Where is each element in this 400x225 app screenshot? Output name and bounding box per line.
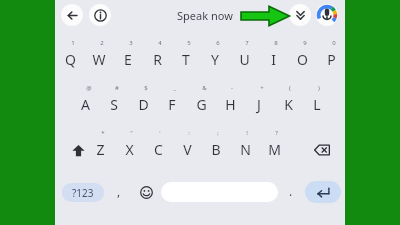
- staticText: A: [81, 95, 90, 114]
- button[interactable]: Info: [89, 4, 111, 26]
- staticText: L: [313, 95, 321, 114]
- button[interactable]: Back: [61, 4, 83, 26]
- button[interactable]: &: [187, 84, 215, 118]
- button[interactable]: ;: [202, 129, 230, 163]
- button[interactable]: 5: [172, 39, 200, 73]
- button[interactable]: .: [281, 183, 301, 205]
- staticText: .: [289, 183, 293, 199]
- button[interactable]: Emoji: [135, 181, 157, 203]
- staticText: &: [202, 84, 207, 92]
- staticText: S: [110, 95, 118, 114]
- staticText: 4: [158, 39, 162, 47]
- button[interactable]: Space: [161, 182, 278, 202]
- button[interactable]: +: [245, 84, 273, 118]
- staticText: $: [144, 84, 148, 92]
- staticText: K: [284, 95, 293, 114]
- staticText: 2: [100, 39, 104, 47]
- button[interactable]: Voice input: [316, 4, 338, 26]
- button[interactable]: 7: [230, 39, 258, 73]
- button[interactable]: $: [129, 84, 157, 118]
- staticText: U: [239, 50, 250, 69]
- staticText: W: [92, 50, 106, 69]
- other: Annotation arrow: [240, 5, 290, 27]
- button[interactable]: 0: [317, 39, 345, 73]
- staticText: O: [297, 50, 308, 69]
- button[interactable]: _: [158, 84, 186, 118]
- staticText: H: [225, 95, 236, 114]
- staticText: V: [183, 140, 192, 159]
- staticText: T: [182, 50, 190, 69]
- staticText: 7: [245, 39, 249, 47]
- staticText: (: [289, 84, 291, 92]
- staticText: +: [260, 84, 264, 92]
- staticText: _: [173, 84, 176, 92]
- staticText: ?123: [72, 186, 94, 200]
- staticText: ): [318, 84, 320, 92]
- staticText: I: [271, 50, 276, 69]
- button[interactable]: Shift: [64, 134, 92, 166]
- button[interactable]: ?123: [62, 183, 104, 202]
- staticText: Y: [211, 50, 219, 69]
- button[interactable]: 2: [85, 39, 113, 73]
- staticText: R: [153, 50, 162, 69]
- staticText: #: [115, 84, 119, 92]
- button[interactable]: ": [115, 129, 143, 163]
- staticText: ": [130, 129, 133, 137]
- button[interactable]: Enter: [305, 181, 341, 203]
- button[interactable]: (: [274, 84, 302, 118]
- staticText: 9: [303, 39, 307, 47]
- staticText: 6: [216, 39, 220, 47]
- staticText: C: [154, 140, 163, 159]
- staticText: 1: [71, 39, 75, 47]
- staticText: X: [125, 140, 134, 159]
- staticText: ': [159, 129, 161, 137]
- button[interactable]: 4: [143, 39, 171, 73]
- button[interactable]: 6: [201, 39, 229, 73]
- staticText: 0: [332, 39, 336, 47]
- button[interactable]: *: [86, 129, 114, 163]
- button[interactable]: @: [71, 84, 99, 118]
- staticText: ?: [275, 129, 278, 137]
- staticText: ,: [117, 183, 121, 199]
- button[interactable]: 9: [288, 39, 316, 73]
- staticText: 8: [274, 39, 278, 47]
- staticText: !: [246, 129, 248, 137]
- button[interactable]: ,: [108, 183, 130, 205]
- staticText: *: [101, 129, 105, 137]
- staticText: Q: [65, 50, 76, 69]
- button[interactable]: !: [231, 129, 259, 163]
- staticText: M: [268, 140, 281, 159]
- staticText: 3: [129, 39, 133, 47]
- staticText: Z: [96, 140, 105, 159]
- staticText: @: [86, 84, 92, 92]
- staticText: ;: [217, 129, 219, 137]
- staticText: G: [196, 95, 207, 114]
- staticText: F: [168, 95, 176, 114]
- button[interactable]: #: [100, 84, 128, 118]
- staticText: -: [231, 84, 233, 92]
- button[interactable]: Speak now: [170, 5, 240, 25]
- button[interactable]: 8: [259, 39, 287, 73]
- button[interactable]: :: [173, 129, 201, 163]
- staticText: N: [240, 140, 251, 159]
- staticText: P: [327, 50, 336, 69]
- button[interactable]: Backspace: [308, 134, 336, 166]
- button[interactable]: -: [216, 84, 244, 118]
- button[interactable]: Collapse keyboard: [289, 4, 311, 26]
- staticText: J: [257, 95, 261, 114]
- staticText: B: [211, 140, 221, 159]
- button[interactable]: ?: [260, 129, 288, 163]
- button[interactable]: ): [303, 84, 331, 118]
- staticText: :: [188, 129, 190, 137]
- staticText: E: [124, 50, 132, 69]
- button[interactable]: 3: [114, 39, 142, 73]
- staticText: 5: [187, 39, 191, 47]
- staticText: D: [138, 95, 149, 114]
- button[interactable]: 1: [56, 39, 84, 73]
- staticText: Speak now: [177, 8, 233, 23]
- button[interactable]: ': [144, 129, 172, 163]
